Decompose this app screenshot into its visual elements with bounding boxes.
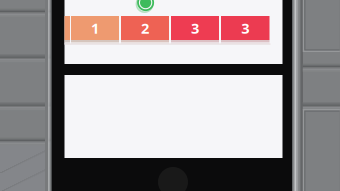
staticText: 3 (191, 18, 199, 38)
button[interactable] (0, 0, 340, 191)
staticText: 1 (91, 18, 99, 38)
button[interactable]: 3 (0, 0, 340, 191)
button[interactable]: 1 (0, 0, 340, 191)
button[interactable]: 2 (0, 0, 340, 191)
staticText: 3 (241, 18, 249, 38)
button[interactable]: 3 (0, 0, 340, 191)
staticText: 2 (141, 18, 149, 38)
